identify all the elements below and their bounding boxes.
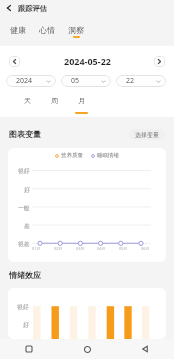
staticText: 情绪效应 bbox=[9, 270, 41, 280]
staticText: 很差 bbox=[18, 240, 30, 247]
staticText: 差 bbox=[24, 222, 30, 229]
staticText: 图表变量 bbox=[9, 129, 41, 139]
staticText: 好 bbox=[23, 321, 29, 328]
staticText: 04月 bbox=[97, 246, 106, 251]
button[interactable]: 22 bbox=[116, 75, 166, 87]
staticText: 2024 bbox=[16, 76, 33, 86]
staticText: 05 bbox=[71, 76, 80, 86]
button[interactable]: Recents bbox=[21, 341, 37, 357]
button[interactable]: 洞察 bbox=[63, 25, 89, 41]
staticText: 02月 bbox=[54, 246, 63, 251]
staticText: 选择变量 bbox=[135, 131, 159, 139]
staticText: 22 bbox=[126, 76, 135, 86]
staticText: 2024-05-22 bbox=[64, 55, 111, 67]
staticText: 天 bbox=[24, 96, 31, 105]
staticText: 很好 bbox=[17, 303, 29, 310]
button[interactable]: 心情 bbox=[34, 25, 60, 41]
staticText: 健康 bbox=[10, 25, 26, 35]
button[interactable]: 周 bbox=[44, 96, 64, 117]
button[interactable]: Next bbox=[154, 56, 165, 67]
staticText: 好 bbox=[24, 186, 30, 193]
staticText: 05月 bbox=[119, 246, 128, 251]
button[interactable]: 05 bbox=[61, 75, 111, 87]
staticText: 03月 bbox=[76, 246, 85, 251]
staticText: 一般 bbox=[18, 204, 30, 211]
staticText: 心情 bbox=[39, 25, 55, 35]
button[interactable]: Back bbox=[3, 2, 15, 14]
staticText: 01月 bbox=[32, 246, 41, 251]
button[interactable]: Back navigation bbox=[137, 341, 153, 357]
staticText: 周 bbox=[51, 96, 58, 105]
staticText: 月 bbox=[78, 96, 85, 105]
staticText: 06月 bbox=[141, 246, 150, 251]
button[interactable]: 健康 bbox=[5, 25, 31, 41]
staticText: 睡眠情绪 bbox=[97, 152, 119, 159]
staticText: 很好 bbox=[18, 167, 30, 174]
staticText: 洞察 bbox=[68, 25, 84, 35]
button[interactable]: 2024 bbox=[6, 75, 56, 87]
button[interactable]: Previous bbox=[9, 56, 20, 67]
button[interactable]: 天 bbox=[17, 96, 37, 117]
button[interactable]: 选择变量 bbox=[129, 129, 165, 140]
staticText: 跟踪评估 bbox=[18, 4, 47, 13]
button[interactable]: 月 bbox=[71, 96, 91, 117]
staticText: 营养质量 bbox=[61, 152, 83, 159]
button[interactable]: Home bbox=[79, 341, 95, 357]
